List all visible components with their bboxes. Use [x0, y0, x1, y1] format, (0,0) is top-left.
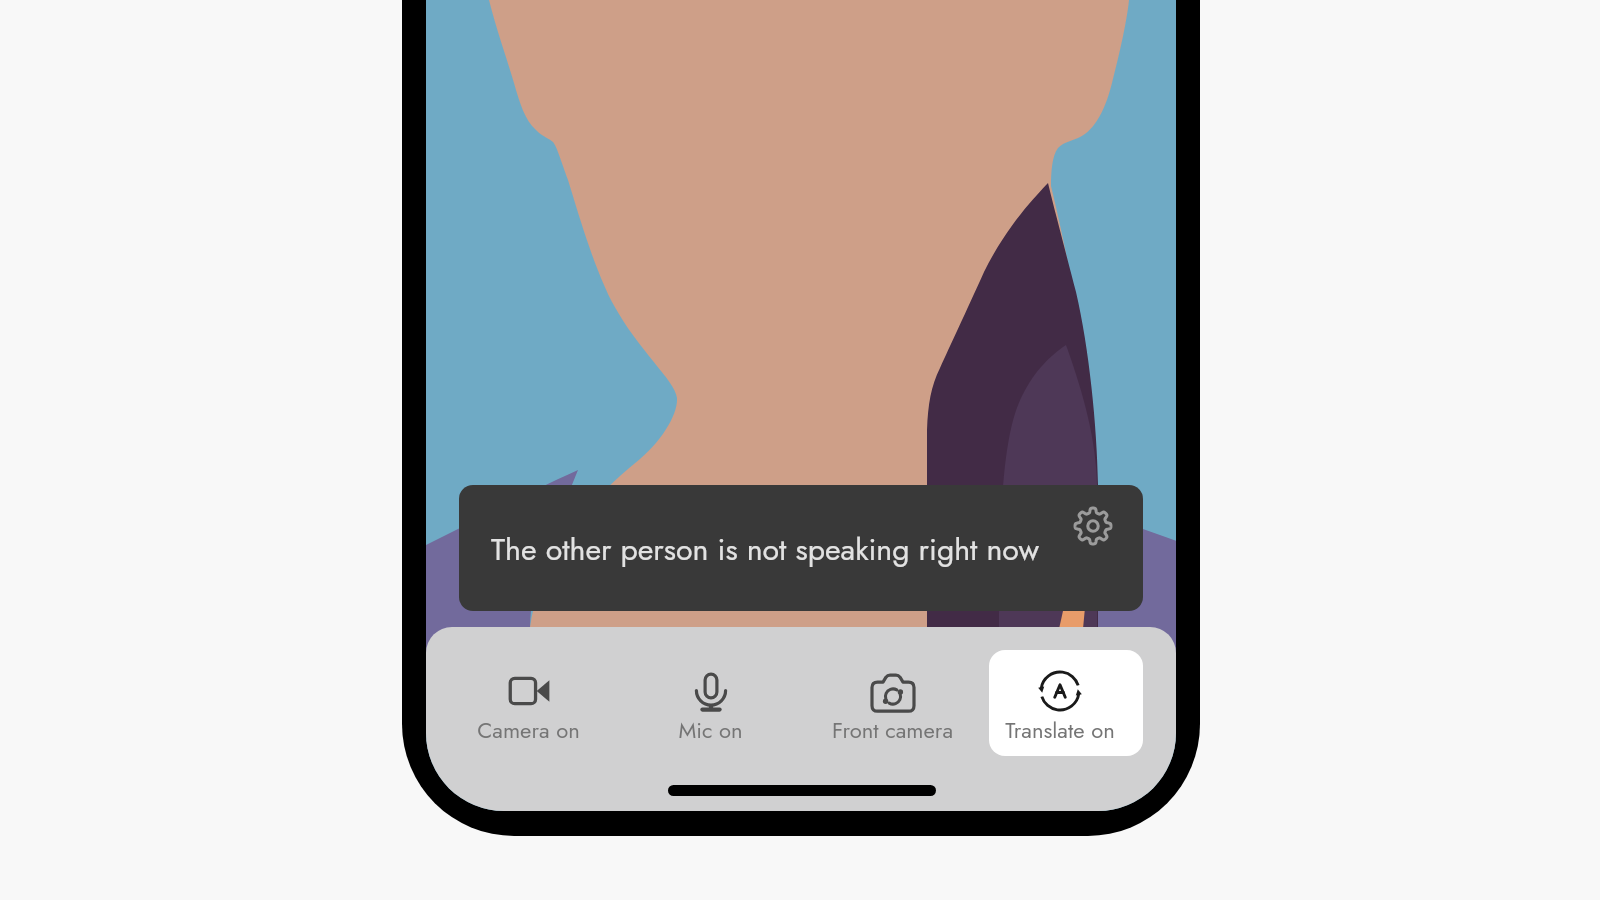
- staticText: Translate on: [1005, 714, 1115, 746]
- button[interactable]: Translate on: [989, 650, 1143, 756]
- staticText: Front camera: [832, 714, 953, 746]
- button[interactable]: Camera on: [451, 650, 605, 756]
- staticText: Mic on: [678, 714, 743, 746]
- staticText: Camera on: [477, 714, 580, 746]
- button[interactable]: Mic on: [633, 650, 787, 756]
- button[interactable]: Front camera: [815, 650, 969, 756]
- staticText: The other person is not speaking right n…: [491, 528, 1040, 572]
- button[interactable]: Caption settings: [1075, 508, 1111, 544]
- button[interactable]: The other person is not speaking right n…: [459, 485, 1143, 611]
